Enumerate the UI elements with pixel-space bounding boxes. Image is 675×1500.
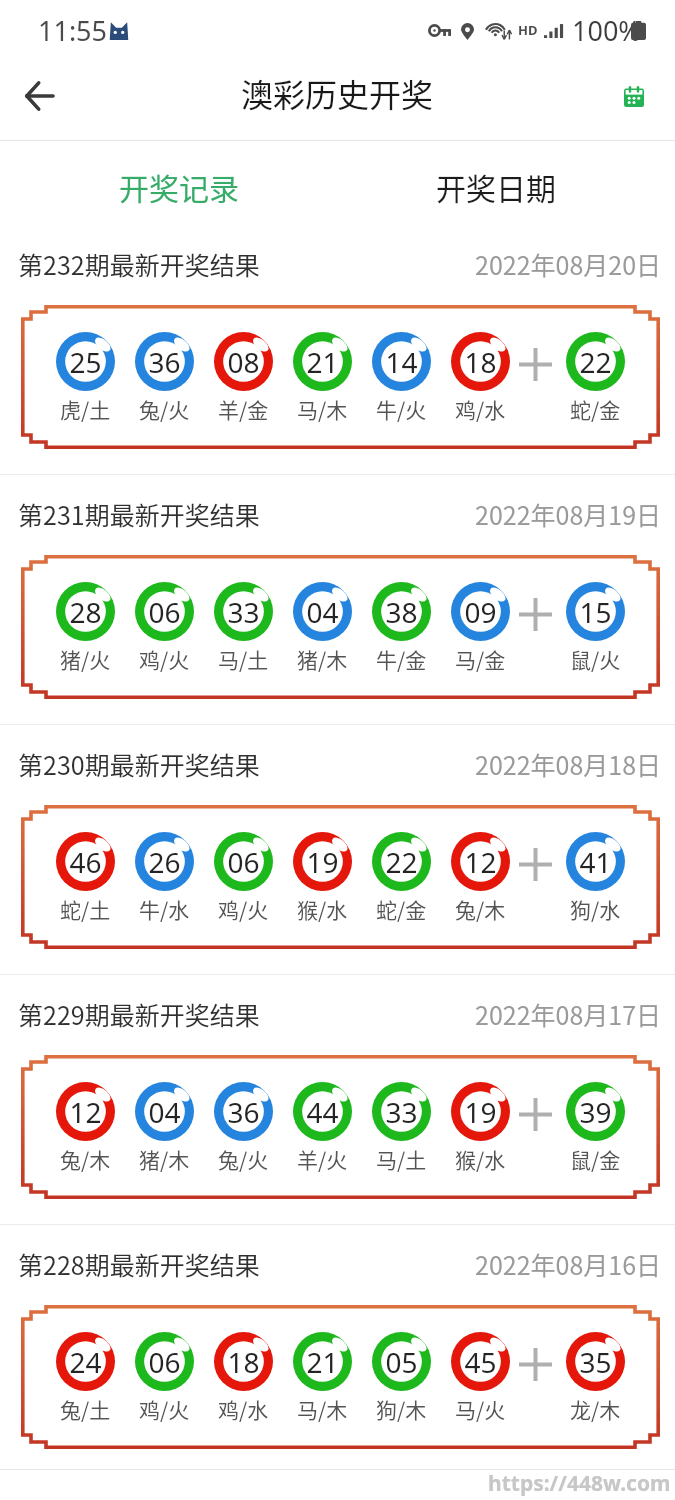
staticText: 14 xyxy=(385,343,418,381)
staticText: 2022年08月20日 xyxy=(475,246,662,282)
staticText: 兔/火 xyxy=(218,1144,269,1174)
staticText: 鸡/水 xyxy=(455,394,506,424)
staticText: 44 xyxy=(306,1093,339,1131)
staticText: 狗/水 xyxy=(570,894,621,924)
button[interactable]: 第228期最新开奖结果 xyxy=(0,1237,675,1449)
staticText: 鸡/水 xyxy=(218,1394,269,1424)
staticText: 2022年08月18日 xyxy=(475,746,662,782)
staticText: 12 xyxy=(69,1093,102,1131)
staticText: 2022年08月16日 xyxy=(475,1246,662,1282)
staticText: 100% xyxy=(572,12,641,49)
button[interactable]: 第230期最新开奖结果 xyxy=(0,737,675,949)
staticText: 12 xyxy=(464,843,497,881)
staticText: 15 xyxy=(579,593,612,631)
staticText: 18 xyxy=(227,1343,260,1381)
staticText: 马/土 xyxy=(218,644,269,674)
staticText: 18 xyxy=(464,343,497,381)
staticText: 38 xyxy=(385,593,418,631)
staticText: 39 xyxy=(579,1093,612,1131)
staticText: 马/土 xyxy=(376,1144,427,1174)
button[interactable]: 第232期最新开奖结果 xyxy=(0,237,675,449)
staticText: 猪/木 xyxy=(297,644,348,674)
button[interactable]: Calendar xyxy=(610,71,658,119)
staticText: 鼠/火 xyxy=(570,644,621,674)
staticText: 19 xyxy=(306,843,339,881)
staticText: 41 xyxy=(579,843,612,881)
staticText: 09 xyxy=(464,593,497,631)
staticText: 猴/水 xyxy=(297,894,348,924)
staticText: 兔/火 xyxy=(139,394,190,424)
staticText: 鸡/火 xyxy=(139,644,190,674)
staticText: 兔/木 xyxy=(455,894,506,924)
staticText: 开奖日期 xyxy=(436,165,556,208)
staticText: 马/木 xyxy=(297,1394,348,1424)
staticText: 兔/土 xyxy=(60,1394,111,1424)
staticText: 猴/水 xyxy=(455,1144,506,1174)
staticText: 鸡/火 xyxy=(139,1394,190,1424)
staticText: 36 xyxy=(148,343,181,381)
staticText: https://448w.com xyxy=(488,1469,671,1498)
staticText: 11:55 xyxy=(38,12,108,49)
staticText: 25 xyxy=(69,343,102,381)
button[interactable]: Back xyxy=(11,69,67,125)
button[interactable]: 开奖记录 xyxy=(59,141,299,237)
staticText: 第232期最新开奖结果 xyxy=(18,246,260,282)
staticText: 牛/金 xyxy=(376,644,427,674)
staticText: 05 xyxy=(385,1343,418,1381)
staticText: 牛/水 xyxy=(139,894,190,924)
staticText: 马/木 xyxy=(297,394,348,424)
staticText: 22 xyxy=(385,843,418,881)
staticText: 2022年08月19日 xyxy=(475,496,662,532)
staticText: 04 xyxy=(148,1093,181,1131)
staticText: 06 xyxy=(227,843,260,881)
staticText: 22 xyxy=(579,343,612,381)
button[interactable]: 开奖日期 xyxy=(376,141,616,237)
staticText: 马/金 xyxy=(455,644,506,674)
staticText: 04 xyxy=(306,593,339,631)
staticText: 蛇/金 xyxy=(376,894,427,924)
staticText: 狗/木 xyxy=(376,1394,427,1424)
staticText: 2022年08月17日 xyxy=(475,996,662,1032)
staticText: 45 xyxy=(464,1343,497,1381)
staticText: 06 xyxy=(148,1343,181,1381)
staticText: 龙/木 xyxy=(570,1394,621,1424)
staticText: 鸡/火 xyxy=(218,894,269,924)
staticText: 第229期最新开奖结果 xyxy=(18,996,260,1032)
staticText: 猪/木 xyxy=(139,1144,190,1174)
staticText: 36 xyxy=(227,1093,260,1131)
staticText: 澳彩历史开奖 xyxy=(241,70,434,116)
staticText: 21 xyxy=(306,1343,339,1381)
staticText: 08 xyxy=(227,343,260,381)
staticText: 第231期最新开奖结果 xyxy=(18,496,260,532)
staticText: 28 xyxy=(69,593,102,631)
staticText: 蛇/金 xyxy=(570,394,621,424)
button[interactable]: 第231期最新开奖结果 xyxy=(0,487,675,699)
button[interactable]: 第229期最新开奖结果 xyxy=(0,987,675,1199)
staticText: 第230期最新开奖结果 xyxy=(18,746,260,782)
staticText: 33 xyxy=(385,1093,418,1131)
staticText: 21 xyxy=(306,343,339,381)
staticText: 羊/火 xyxy=(297,1144,348,1174)
staticText: 24 xyxy=(69,1343,102,1381)
staticText: 46 xyxy=(69,843,102,881)
staticText: 开奖记录 xyxy=(119,165,239,208)
staticText: 兔/木 xyxy=(60,1144,111,1174)
staticText: 19 xyxy=(464,1093,497,1131)
staticText: 35 xyxy=(579,1343,612,1381)
staticText: 26 xyxy=(148,843,181,881)
staticText: 猪/火 xyxy=(60,644,111,674)
staticText: 鼠/金 xyxy=(570,1144,621,1174)
staticText: 第228期最新开奖结果 xyxy=(18,1246,260,1282)
staticText: 虎/土 xyxy=(60,394,111,424)
staticText: 牛/火 xyxy=(376,394,427,424)
staticText: 蛇/土 xyxy=(60,894,111,924)
staticText: 马/火 xyxy=(455,1394,506,1424)
staticText: 06 xyxy=(148,593,181,631)
staticText: HD xyxy=(518,21,538,39)
staticText: 33 xyxy=(227,593,260,631)
staticText: 羊/金 xyxy=(218,394,269,424)
